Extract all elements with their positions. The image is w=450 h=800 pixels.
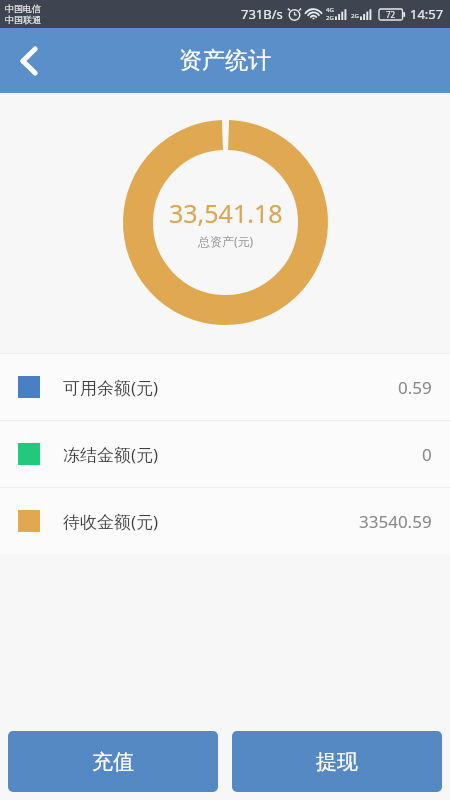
staticText: 4G [326,6,334,14]
staticText: 资产统计 [179,46,271,75]
button[interactable]: Back [0,28,58,93]
staticText: 72 [386,9,396,20]
staticText: 731B/s [241,5,283,23]
button[interactable]: 充值 [8,731,218,792]
staticText: 33540.59 [359,510,432,533]
staticText: 14:57 [410,5,444,23]
button[interactable]: 待收金额(元) [0,488,450,554]
staticText: 2G [326,14,334,22]
staticText: 可用余额(元) [63,376,159,399]
staticText: 待收金额(元) [63,510,159,533]
staticText: 0 [422,443,432,466]
button[interactable]: 冻结金额(元) [0,421,450,487]
staticText: 提现 [316,749,358,775]
staticText: 中国联通 [5,14,41,25]
staticText: 冻结金额(元) [63,443,159,466]
button[interactable]: 可用余额(元) [0,354,450,420]
staticText: 33,541.18 [169,196,283,230]
staticText: 充值 [92,749,134,775]
staticText: 2G [351,12,359,20]
button[interactable]: 提现 [232,731,442,792]
staticText: 总资产(元) [198,233,254,249]
staticText: 0.59 [398,376,432,399]
staticText: 中国电信 [5,3,41,14]
